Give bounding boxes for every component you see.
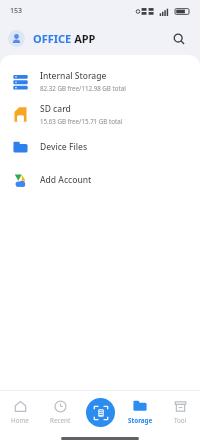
button[interactable]: Account (8, 30, 25, 47)
staticText: Recent (50, 416, 71, 425)
staticText: Tool (174, 416, 187, 425)
staticText: Add Account (40, 174, 92, 186)
button[interactable]: Device Files (0, 130, 200, 163)
staticText: OFFICE APP (33, 31, 96, 46)
staticText: Storage (128, 416, 153, 425)
button[interactable]: Scan document (86, 398, 115, 427)
staticText: Internal Storage (40, 70, 107, 82)
staticText: 15.63 GB free/15.71 GB total (40, 117, 123, 125)
button[interactable]: Add Account (0, 163, 200, 196)
staticText: 153 (10, 6, 23, 16)
button[interactable]: Storage (120, 390, 160, 434)
button[interactable]: Recent (40, 390, 80, 434)
staticText: Home (11, 416, 29, 425)
button[interactable]: Home (0, 390, 40, 434)
staticText: 82.32 GB free/112.98 GB total (40, 84, 126, 92)
button[interactable]: Search (168, 28, 190, 50)
button[interactable]: Tool (160, 390, 200, 434)
button[interactable]: Internal Storage (0, 64, 200, 97)
staticText: Device Files (40, 141, 88, 153)
button[interactable]: SD card (0, 97, 200, 130)
staticText: SD card (40, 103, 71, 115)
